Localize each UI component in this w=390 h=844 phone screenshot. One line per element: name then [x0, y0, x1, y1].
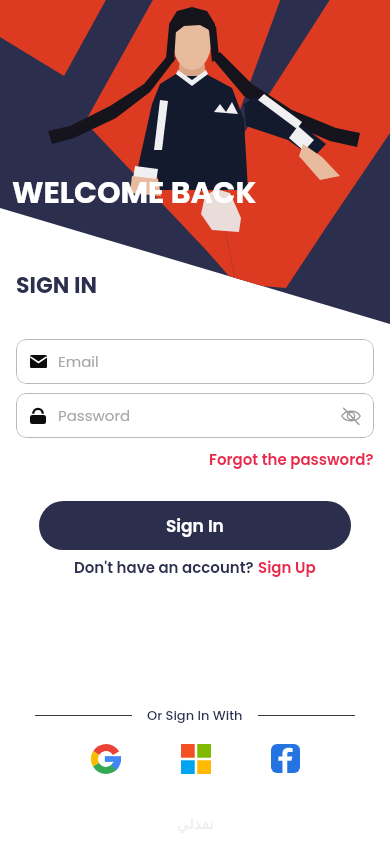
button[interactable]: Sign in with Facebook	[271, 744, 300, 773]
button[interactable]: Sign In	[39, 501, 351, 550]
staticText: Sign In	[166, 514, 224, 538]
button[interactable]: Email	[16, 339, 374, 384]
staticText: نفذلي	[177, 815, 214, 832]
staticText: Don't have an account?	[74, 557, 258, 578]
button[interactable]: Show password	[341, 406, 361, 426]
staticText: Email	[58, 351, 99, 372]
button[interactable]: Sign Up	[258, 557, 316, 578]
staticText: Or Sign In With	[147, 706, 243, 724]
staticText: WELCOME BACK	[12, 172, 257, 214]
button[interactable]: Password	[16, 393, 374, 438]
button[interactable]: Forgot the password?	[209, 449, 390, 470]
button[interactable]: Sign in with Google	[91, 744, 121, 774]
button[interactable]: Sign in with Microsoft	[181, 744, 211, 774]
staticText: Password	[58, 405, 131, 426]
staticText: SIGN IN	[16, 270, 98, 301]
